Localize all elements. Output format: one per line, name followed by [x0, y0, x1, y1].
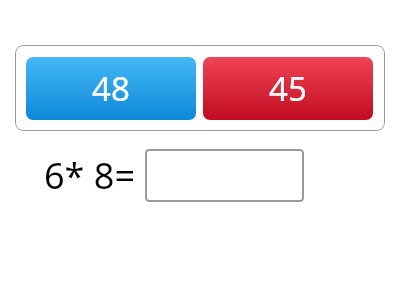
staticText: 45: [269, 66, 307, 111]
staticText: 6* 8=: [44, 151, 135, 200]
button[interactable]: 48: [26, 57, 196, 120]
staticText: 48: [92, 66, 130, 111]
button[interactable]: [145, 149, 304, 202]
button[interactable]: 45: [203, 57, 373, 120]
